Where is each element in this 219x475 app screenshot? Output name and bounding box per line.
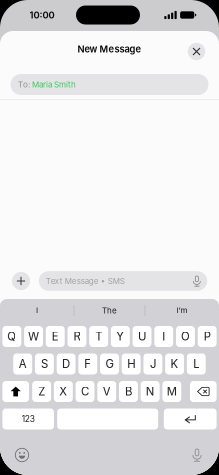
button[interactable]: J [143, 353, 162, 374]
button[interactable]: Close [185, 40, 207, 62]
staticText: E [52, 330, 59, 343]
staticText: V [103, 385, 111, 398]
button[interactable]: P [198, 326, 217, 347]
button[interactable]: Z [32, 381, 51, 402]
staticText: N [146, 385, 155, 398]
staticText: I [162, 330, 165, 343]
staticText: W [28, 330, 39, 343]
button[interactable]: Q [2, 326, 21, 347]
button[interactable]: K [165, 353, 184, 374]
staticText: J [150, 357, 156, 371]
staticText: A [19, 357, 27, 371]
staticText: New Message [77, 43, 141, 55]
button[interactable]: Delete [190, 381, 217, 402]
staticText: Y [116, 330, 124, 343]
button[interactable]: Numbers and symbols [2, 408, 54, 429]
staticText: Z [38, 385, 45, 398]
button[interactable]: M [162, 381, 181, 402]
staticText: I [36, 306, 38, 315]
button[interactable]: C [76, 381, 94, 402]
staticText: The [102, 306, 117, 315]
staticText: G [105, 357, 113, 371]
staticText: 123 [22, 414, 35, 424]
button[interactable]: To: [10, 74, 208, 95]
button[interactable]: T [89, 326, 108, 347]
staticText: K [171, 357, 179, 371]
staticText: To: [18, 80, 32, 89]
button[interactable]: X [54, 381, 73, 402]
button[interactable]: H [122, 353, 141, 374]
staticText: M [167, 385, 177, 398]
button[interactable]: A [13, 353, 32, 374]
staticText: X [59, 385, 67, 398]
button[interactable]: Add attachment [11, 271, 31, 291]
button[interactable]: Dictation [184, 444, 210, 466]
button[interactable]: Text Message • SMS [39, 271, 207, 291]
button[interactable]: D [57, 353, 75, 374]
button[interactable]: W [24, 326, 43, 347]
staticText: F [84, 357, 91, 371]
button[interactable]: B [119, 381, 138, 402]
staticText: R [73, 330, 80, 343]
staticText: I’m [176, 306, 187, 315]
staticText: L [193, 357, 199, 371]
button[interactable]: I’m [146, 299, 218, 321]
button[interactable]: V [97, 381, 116, 402]
button[interactable]: S [35, 353, 54, 374]
staticText: T [95, 330, 102, 343]
staticText: Text Message • SMS [46, 276, 125, 286]
button[interactable]: I [1, 299, 73, 321]
staticText: 10:00 [29, 9, 54, 21]
button[interactable]: Return [164, 408, 217, 429]
button[interactable]: I [154, 326, 173, 347]
staticText: P [204, 330, 211, 343]
staticText: S [41, 357, 48, 371]
button[interactable]: Emoji [9, 444, 35, 466]
staticText: H [127, 357, 135, 371]
button[interactable]: F [78, 353, 97, 374]
staticText: Q [7, 330, 16, 343]
staticText: B [125, 385, 132, 398]
button[interactable]: G [100, 353, 119, 374]
button[interactable]: Shift [2, 381, 29, 402]
staticText: Maria Smith [32, 80, 76, 89]
button[interactable]: R [67, 326, 86, 347]
staticText: U [138, 330, 146, 343]
button[interactable]: U [133, 326, 151, 347]
button[interactable]: space [57, 408, 158, 429]
staticText: C [81, 385, 89, 398]
button[interactable]: E [46, 326, 65, 347]
button[interactable]: O [176, 326, 195, 347]
button[interactable]: L [187, 353, 206, 374]
button[interactable]: The [75, 299, 144, 321]
staticText: O [181, 330, 190, 343]
button[interactable]: Y [111, 326, 130, 347]
staticText: D [62, 357, 70, 371]
button[interactable]: N [141, 381, 160, 402]
